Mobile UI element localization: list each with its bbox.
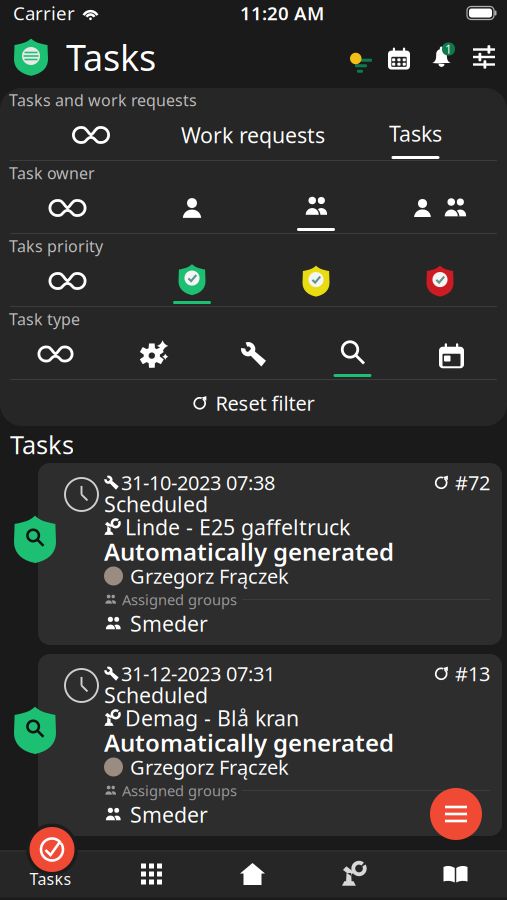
staticText: #13	[455, 660, 490, 687]
button[interactable]: Filter	[335, 35, 378, 79]
staticText: 31-10-2023 07:38	[121, 469, 275, 496]
staticText: Smeder	[130, 800, 208, 829]
button[interactable]: High priority	[378, 258, 502, 304]
button[interactable]: All	[10, 111, 172, 159]
staticText: Linde - E25 gaffeltruck	[125, 513, 350, 541]
button[interactable]: Documentation	[404, 850, 507, 897]
button[interactable]: Any owner	[5, 185, 130, 231]
staticText: Assigned groups	[122, 590, 237, 609]
staticText: Demag - Blå kran	[125, 704, 299, 732]
button[interactable]: 31-10-2023 07:38	[0, 463, 507, 645]
button[interactable]: Machines	[303, 850, 404, 897]
staticText: Scheduled	[104, 490, 208, 518]
button[interactable]: Modules	[101, 850, 202, 897]
staticText: Grzegorz Frączek	[130, 563, 289, 589]
staticText: Grzegorz Frączek	[130, 754, 289, 780]
button[interactable]: Settings	[463, 35, 495, 79]
staticText: Task type	[9, 308, 80, 330]
button[interactable]: Reset filter	[10, 380, 497, 426]
button[interactable]: Me and my groups	[378, 185, 502, 231]
staticText: Work requests	[181, 121, 325, 149]
staticText: Scheduled	[104, 681, 208, 709]
staticText: Carrier	[13, 1, 75, 25]
button[interactable]: Home	[202, 850, 303, 897]
button[interactable]: Tasks	[0, 850, 101, 897]
staticText: Reset filter	[215, 390, 314, 416]
button[interactable]: Notifications	[420, 35, 463, 79]
staticText: 31-12-2023 07:31	[121, 660, 275, 687]
staticText: Tasks	[389, 119, 442, 148]
staticText: Smeder	[130, 609, 208, 638]
staticText: #72	[455, 469, 490, 496]
staticText: Tasks and work requests	[9, 89, 197, 111]
button[interactable]: My groups	[254, 185, 378, 231]
button[interactable]: Tasks	[334, 111, 497, 159]
button[interactable]: Any priority	[5, 258, 130, 304]
staticText: Tasks	[29, 868, 71, 889]
button[interactable]: Menu	[430, 788, 482, 840]
staticText: Tasks	[66, 33, 156, 81]
button[interactable]: Scheduled	[402, 331, 501, 377]
staticText: Automatically generated	[104, 536, 394, 567]
button[interactable]: Maintenance	[204, 331, 303, 377]
staticText: Task owner	[9, 162, 95, 184]
button[interactable]: App	[13, 37, 49, 77]
staticText: Tasks	[10, 428, 74, 461]
staticText: Automatically generated	[104, 727, 394, 758]
button[interactable]: Work requests	[172, 111, 334, 159]
button[interactable]: 31-12-2023 07:31	[0, 654, 507, 836]
button[interactable]: Any type	[6, 331, 105, 377]
button[interactable]: Medium priority	[254, 258, 378, 304]
staticText: 1	[445, 41, 452, 57]
button[interactable]: Calendar	[378, 35, 420, 79]
staticText: 11:20 AM	[240, 1, 324, 25]
button[interactable]: Inspection	[303, 331, 402, 377]
button[interactable]: Tasks tab	[26, 823, 78, 875]
button[interactable]: Automatic	[105, 331, 204, 377]
button[interactable]: Assigned to me	[130, 185, 254, 231]
staticText: Assigned groups	[122, 781, 237, 800]
button[interactable]: Low priority	[130, 258, 254, 304]
staticText: Taks priority	[9, 235, 103, 257]
